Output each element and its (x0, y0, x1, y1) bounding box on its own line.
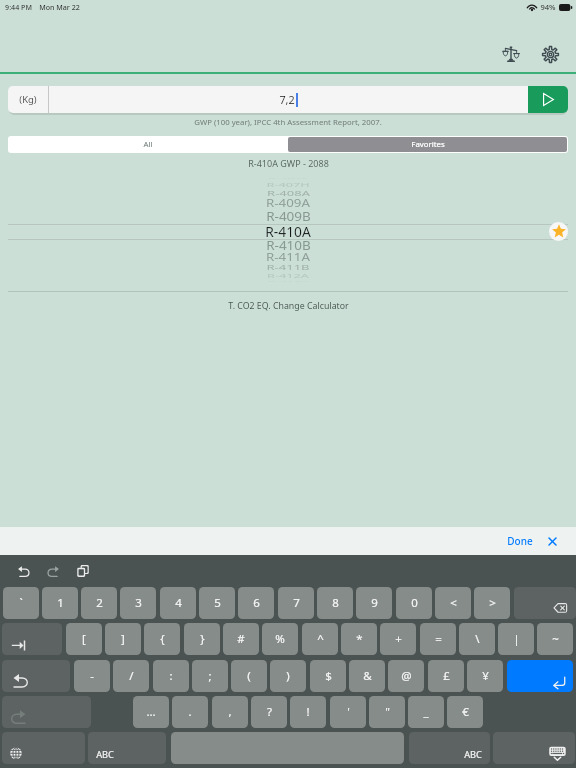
button[interactable]: ! (290, 696, 326, 728)
staticText: ' (347, 704, 350, 720)
button[interactable]: Backspace (514, 587, 576, 619)
button[interactable]: ¥ (467, 660, 503, 692)
button[interactable]: Close keyboard (541, 527, 564, 555)
button[interactable]: Done (500, 527, 540, 555)
button[interactable]: # (223, 623, 259, 655)
button[interactable]: Settings (533, 37, 567, 71)
staticText: / (129, 668, 134, 684)
button[interactable]: 3 (120, 587, 156, 619)
button[interactable]: ) (270, 660, 306, 692)
button[interactable]: Return (507, 660, 573, 692)
button[interactable]: Calculate (528, 86, 568, 113)
button[interactable]: - (74, 660, 110, 692)
button[interactable]: 8 (317, 587, 353, 619)
staticText: | (513, 631, 520, 647)
staticText: 1 (57, 595, 64, 611)
button[interactable]: > (474, 587, 510, 619)
staticText: 4 (175, 595, 182, 611)
button[interactable]: { (144, 623, 180, 655)
button[interactable]: 0 (396, 587, 432, 619)
button[interactable]: . (172, 696, 208, 728)
staticText: T. CO2 EQ. Change Calculator (228, 300, 349, 312)
button[interactable]: $ (310, 660, 346, 692)
staticText: ABC (96, 748, 114, 761)
staticText: 7,2 (279, 92, 295, 107)
button[interactable]: € (447, 696, 483, 728)
staticText: GWP (100 year), IPCC 4th Assessment Repo… (194, 117, 382, 128)
staticText: R-410B (266, 236, 311, 253)
staticText: R-410A GWP - 2088 (248, 157, 329, 169)
button[interactable]: & (349, 660, 385, 692)
button[interactable]: 1 (42, 587, 78, 619)
staticText: = (435, 631, 442, 647)
button[interactable]: (Kg) (8, 86, 48, 113)
button[interactable]: R-410A (0, 222, 576, 241)
button[interactable]: ' (330, 696, 366, 728)
staticText: € (462, 704, 469, 720)
staticText: [ (82, 631, 86, 647)
button[interactable]: * (341, 623, 377, 655)
button[interactable]: ? (251, 696, 287, 728)
button[interactable]: ^ (302, 623, 338, 655)
button[interactable]: ` (3, 587, 39, 619)
button[interactable]: ] (105, 623, 141, 655)
button[interactable]: Favorite (549, 222, 568, 241)
button[interactable]: ( (231, 660, 267, 692)
button[interactable]: 4 (160, 587, 196, 619)
button[interactable]: % (262, 623, 298, 655)
staticText: { (160, 631, 165, 647)
staticText: ^ (317, 631, 324, 647)
button[interactable]: _ (408, 696, 444, 728)
staticText: 9 (371, 595, 378, 611)
button[interactable]: Undo (12, 560, 34, 582)
staticText: 2 (96, 595, 103, 611)
button[interactable]: } (184, 623, 220, 655)
button[interactable]: Change language (2, 732, 85, 764)
button[interactable]: < (435, 587, 471, 619)
staticText: # (237, 631, 245, 647)
button[interactable]: Undo (2, 660, 70, 692)
button[interactable]: [ (66, 623, 102, 655)
button[interactable]: @ (388, 660, 424, 692)
button[interactable]: " (369, 696, 405, 728)
button[interactable]: £ (428, 660, 464, 692)
button[interactable]: 9 (356, 587, 392, 619)
button[interactable]: … (133, 696, 169, 728)
button[interactable]: Paste (72, 560, 94, 582)
button[interactable]: Hide keyboard (493, 732, 575, 764)
button[interactable]: / (113, 660, 149, 692)
button[interactable]: 7 (278, 587, 314, 619)
button[interactable]: = (420, 623, 456, 655)
button[interactable]: Redo (2, 696, 91, 728)
staticText: 94% (540, 2, 556, 12)
button[interactable]: | (498, 623, 534, 655)
staticText: * (356, 631, 363, 647)
button[interactable]: 5 (199, 587, 235, 619)
button[interactable]: All (8, 136, 288, 153)
button[interactable]: ~ (537, 623, 573, 655)
button[interactable]: Convert units (494, 37, 528, 71)
button[interactable]: 7,2 (49, 86, 528, 113)
staticText: R-407H (266, 181, 310, 188)
button[interactable]: 6 (238, 587, 274, 619)
button[interactable]: : (153, 660, 189, 692)
button[interactable]: + (380, 623, 416, 655)
staticText: ) (286, 668, 290, 684)
staticText: ~ (552, 631, 559, 647)
button[interactable]: , (212, 696, 248, 728)
staticText: Mon Mar 22 (39, 2, 80, 12)
button[interactable]: Tab (2, 623, 62, 655)
staticText: (Kg) (19, 93, 37, 106)
button[interactable]: ABC keyboard (88, 732, 166, 764)
button[interactable]: 2 (81, 587, 117, 619)
button[interactable]: \ (459, 623, 495, 655)
button[interactable]: Redo (42, 560, 64, 582)
button[interactable]: ; (192, 660, 228, 692)
staticText: 3 (135, 595, 142, 611)
staticText: R-409A (266, 196, 310, 210)
button[interactable]: ABC keyboard (409, 732, 490, 764)
staticText: ? (267, 704, 272, 720)
button[interactable]: Favorites (288, 137, 567, 152)
